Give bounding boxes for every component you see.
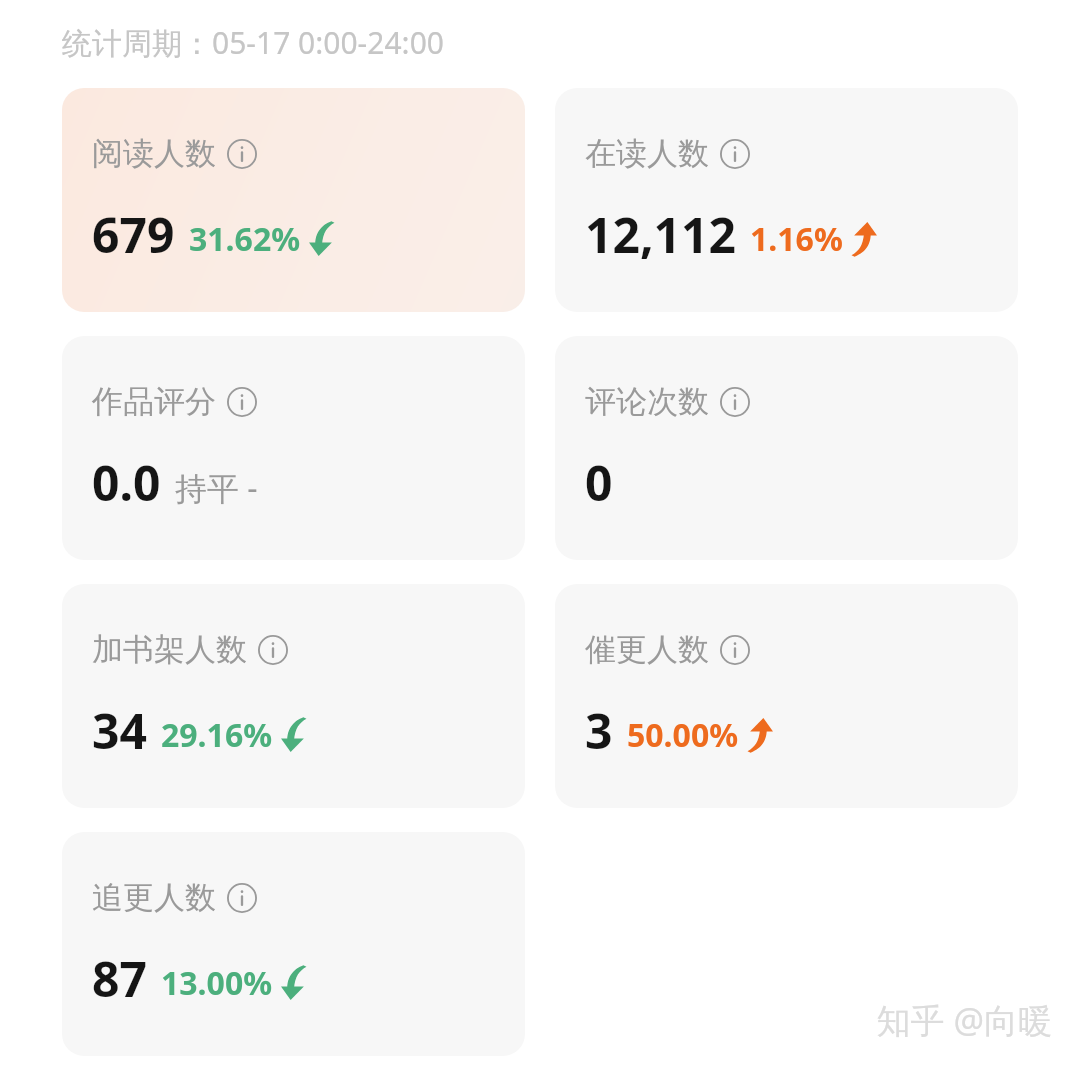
staticText: 29.16% bbox=[161, 713, 273, 757]
staticText: 3 bbox=[585, 698, 613, 763]
staticText: 679 bbox=[92, 202, 175, 267]
staticText: 1.16% bbox=[750, 217, 843, 261]
staticText: 50.00% bbox=[627, 713, 739, 757]
staticText: 34 bbox=[92, 698, 147, 763]
other: 下降 bbox=[281, 718, 307, 752]
staticText: 13.00% bbox=[161, 961, 273, 1005]
staticText: 31.62% bbox=[189, 217, 301, 261]
staticText: 持平 - bbox=[175, 466, 258, 510]
staticText: 加书架人数 bbox=[92, 630, 247, 669]
button[interactable]: 阅读人数 bbox=[62, 88, 525, 312]
button[interactable]: 追更人数 bbox=[62, 832, 525, 1056]
other: 说明 bbox=[720, 139, 750, 169]
staticText: 0 bbox=[585, 450, 613, 515]
staticText: 知乎 @向暖 bbox=[876, 997, 1052, 1043]
staticText: 评论次数 bbox=[585, 382, 709, 421]
staticText: 阅读人数 bbox=[92, 134, 216, 173]
other: 说明 bbox=[720, 635, 750, 665]
other: 说明 bbox=[227, 139, 257, 169]
other: 上升 bbox=[747, 718, 773, 752]
other: 上升 bbox=[851, 222, 877, 256]
other: 说明 bbox=[227, 387, 257, 417]
other: 下降 bbox=[281, 966, 307, 1000]
other: 说明 bbox=[720, 387, 750, 417]
button[interactable]: 在读人数 bbox=[555, 88, 1018, 312]
other: 下降 bbox=[309, 222, 335, 256]
button[interactable]: 加书架人数 bbox=[62, 584, 525, 808]
staticText: 87 bbox=[92, 946, 147, 1011]
staticText: 在读人数 bbox=[585, 134, 709, 173]
staticText: 作品评分 bbox=[92, 382, 216, 421]
other: 说明 bbox=[227, 883, 257, 913]
other: 说明 bbox=[258, 635, 288, 665]
button[interactable]: 催更人数 bbox=[555, 584, 1018, 808]
staticText: 12,112 bbox=[585, 202, 736, 267]
button[interactable]: 作品评分 bbox=[62, 336, 525, 560]
button[interactable]: 评论次数 bbox=[555, 336, 1018, 560]
staticText: 追更人数 bbox=[92, 878, 216, 917]
staticText: 统计周期：05-17 0:00-24:00 bbox=[62, 22, 444, 63]
staticText: 催更人数 bbox=[585, 630, 709, 669]
staticText: 0.0 bbox=[92, 450, 161, 515]
